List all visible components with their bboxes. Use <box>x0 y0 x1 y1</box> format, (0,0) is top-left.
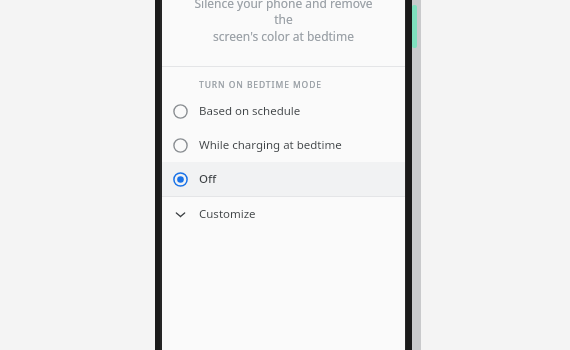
staticText: screen's color at bedtime <box>213 28 354 44</box>
button[interactable]: Based on schedule <box>162 94 405 128</box>
other: Expand customize <box>174 208 187 221</box>
staticText: Based on schedule <box>199 103 301 119</box>
button[interactable]: While charging at bedtime <box>162 128 405 162</box>
staticText: Silence your phone and remove the <box>192 0 375 27</box>
staticText: TURN ON BEDTIME MODE <box>199 79 322 91</box>
button[interactable]: Expand customize <box>162 197 405 231</box>
staticText: While charging at bedtime <box>199 137 342 153</box>
staticText: Off <box>199 171 217 187</box>
staticText: Customize <box>199 206 256 222</box>
button[interactable]: Off <box>162 162 405 196</box>
